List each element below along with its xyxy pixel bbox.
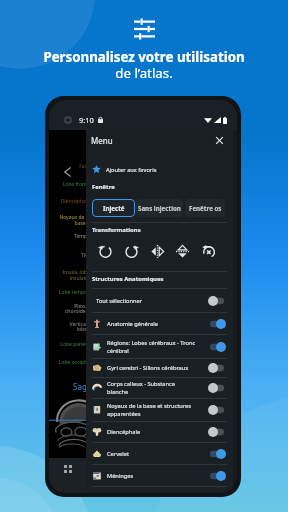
- button[interactable]: Réinitialiser: [200, 243, 217, 260]
- staticText: base,: [50, 220, 87, 227]
- staticText: de l’atlas.: [115, 64, 173, 82]
- button[interactable]: Désactivé: [208, 383, 226, 393]
- button[interactable]: Miroir horizontal: [149, 243, 166, 260]
- staticText: insulair: [50, 275, 87, 282]
- staticText: Régions: Lobes cérébraux - Tronc: [107, 339, 196, 347]
- button[interactable]: Anatomie générale: [86, 313, 233, 334]
- staticText: Ajouter aux favoris: [106, 166, 157, 174]
- button[interactable]: Désactivé: [208, 363, 226, 373]
- button[interactable]: Diencéphale: [86, 422, 233, 442]
- button[interactable]: Rotation gauche: [97, 243, 114, 260]
- staticText: Temp: [50, 233, 87, 240]
- button[interactable]: Sans injection: [136, 199, 183, 217]
- button[interactable]: Tout sélectionner: [86, 289, 233, 312]
- staticText: Fenêtre: [92, 183, 115, 191]
- button[interactable]: Méninges: [86, 465, 233, 486]
- staticText: Tit: [50, 252, 87, 259]
- staticText: Lobe occipit: [50, 359, 87, 366]
- staticText: Tout sélectionner: [96, 297, 143, 305]
- staticText: Personnalisez votre utilisation: [43, 48, 245, 66]
- staticText: Sag: [73, 381, 87, 392]
- staticText: 9:10: [79, 115, 94, 125]
- staticText: Diencéphale: [107, 428, 141, 436]
- staticText: Fac: [50, 163, 87, 170]
- button[interactable]: Miroir vertical: [174, 243, 191, 260]
- button[interactable]: Injecté: [92, 199, 135, 217]
- button[interactable]: Fenêtre os: [185, 199, 225, 217]
- staticText: Menu: [91, 135, 113, 146]
- staticText: Noyaux de la base et structures: [107, 402, 192, 410]
- staticText: Anatomie générale: [107, 320, 158, 328]
- button[interactable]: Rotation droite: [123, 243, 140, 260]
- button[interactable]: Activé: [208, 319, 226, 329]
- staticText: Insula, lob: [50, 269, 87, 276]
- staticText: choroide,: [50, 308, 87, 315]
- staticText: Lobe front: [50, 181, 87, 188]
- button[interactable]: Ajouter aux favoris: [86, 159, 233, 180]
- staticText: Transformations: [92, 226, 141, 234]
- staticText: Injecté: [103, 204, 125, 212]
- staticText: Corps calleux - Substance: [107, 380, 176, 388]
- staticText: Gyri cerebri - Sillons cérébraux: [107, 364, 189, 372]
- staticText: Diéncéphal: [50, 198, 87, 205]
- staticText: Vertical: [50, 321, 87, 328]
- staticText: Noyaux de l: [50, 214, 87, 221]
- button[interactable]: Désactivé: [208, 427, 226, 437]
- staticText: cérébral: [107, 347, 129, 355]
- button[interactable]: Fermer: [214, 135, 225, 146]
- staticText: Lobe pariét: [50, 341, 87, 348]
- staticText: lobe: [50, 326, 87, 333]
- button[interactable]: Activé: [208, 449, 226, 459]
- staticText: Méninges: [107, 472, 134, 480]
- staticText: Cervelet: [107, 450, 129, 458]
- button[interactable]: Désactivé: [208, 296, 226, 306]
- button[interactable]: Menu: [86, 130, 233, 151]
- staticText: Lobe tempo: [50, 289, 87, 296]
- staticText: Plexu: [50, 303, 87, 310]
- button[interactable]: Activé: [208, 471, 226, 481]
- button[interactable]: Corps calleux - Substance: [86, 378, 233, 398]
- button[interactable]: Régions: Lobes cérébraux - Tronc: [86, 335, 233, 358]
- button[interactable]: Activé: [208, 342, 226, 352]
- button[interactable]: Gyri cerebri - Sillons cérébraux: [86, 359, 233, 377]
- staticText: blanche: [107, 388, 129, 396]
- button[interactable]: Cervelet: [86, 443, 233, 464]
- staticText: apparentées: [107, 410, 141, 418]
- staticText: Sans injection: [138, 204, 181, 212]
- staticText: Fenêtre os: [189, 204, 222, 212]
- button[interactable]: Désactivé: [208, 405, 226, 415]
- staticText: Structures Anatomiques: [92, 275, 164, 283]
- button[interactable]: Noyaux de la base et structures: [86, 399, 233, 421]
